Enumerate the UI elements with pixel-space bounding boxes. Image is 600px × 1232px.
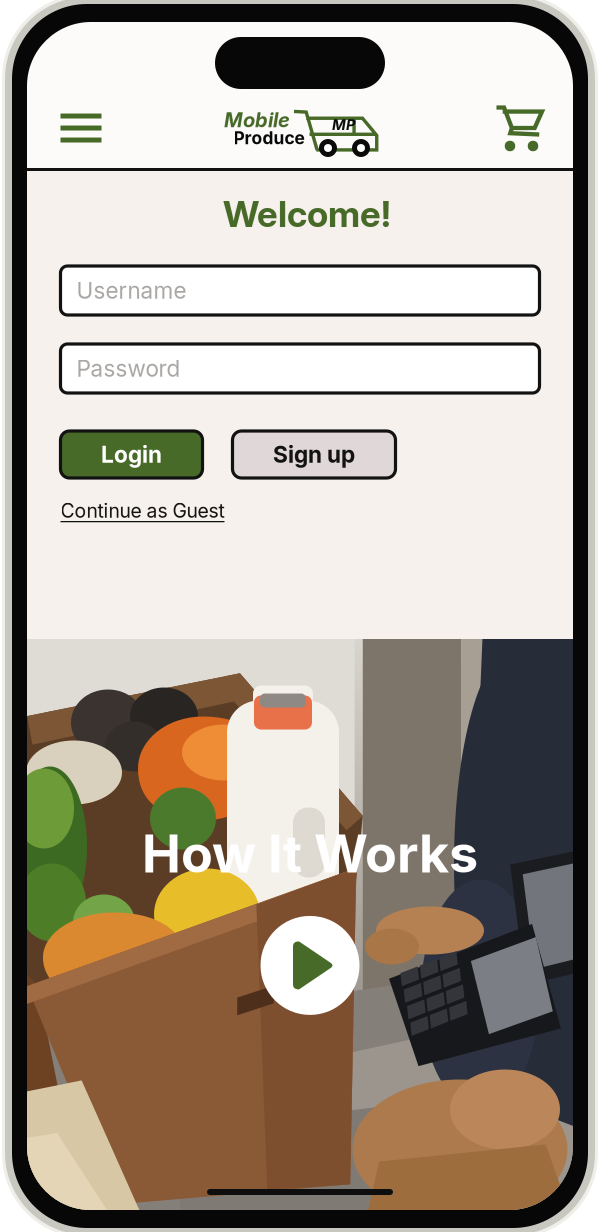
button[interactable]: Username [60,266,539,315]
button[interactable]: Play video [260,916,359,1015]
button[interactable]: Login [60,431,202,478]
staticText: Produce [233,127,304,148]
staticText: How It Works [142,822,478,885]
button[interactable]: Sign up [232,431,395,478]
staticText: Login [101,441,162,468]
staticText: Username [76,277,186,304]
staticText: Mobile [224,108,290,132]
staticText: Welcome! [223,192,391,236]
button[interactable]: Menu [45,100,117,156]
staticText: Continue as Guest [60,499,224,522]
button[interactable]: Cart [483,100,555,156]
button[interactable]: Password [60,344,539,393]
staticText: Sign up [273,441,355,468]
staticText: Password [76,355,180,382]
staticText: MP [332,116,356,134]
button[interactable]: Continue as Guest [60,499,224,522]
